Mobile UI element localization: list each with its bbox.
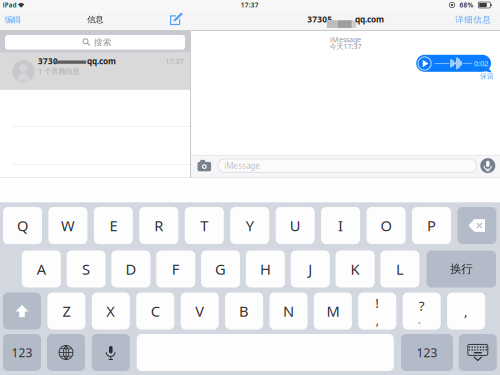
staticText: F (172, 259, 180, 279)
staticText: 3730 (38, 55, 58, 67)
staticText: O (381, 215, 392, 235)
button[interactable]: ! (358, 292, 396, 329)
staticText: Z (62, 301, 70, 321)
button[interactable] (92, 334, 130, 371)
staticText: 信息 (87, 14, 103, 25)
staticText: iMessage (224, 160, 260, 171)
staticText: U (290, 215, 301, 235)
staticText: H (260, 259, 271, 279)
button[interactable]: F (156, 250, 195, 287)
staticText: A (37, 259, 46, 279)
button[interactable]: G (201, 250, 240, 287)
button[interactable]: C (136, 292, 174, 329)
button[interactable]: U (276, 207, 315, 244)
staticText: , (464, 302, 468, 320)
button[interactable]: Camera (196, 157, 212, 173)
button[interactable]: Y (230, 207, 269, 244)
button[interactable]: I (321, 207, 360, 244)
staticText: qq.com (87, 55, 116, 67)
button[interactable] (3, 292, 41, 329)
staticText: iPad (3, 1, 17, 9)
staticText: Y (246, 215, 254, 235)
staticText: 123 (416, 344, 437, 361)
button[interactable]: 3730 (0, 53, 190, 90)
staticText: qq.com (355, 14, 384, 25)
staticText: 保留 (480, 72, 494, 80)
staticText: B (239, 301, 249, 321)
staticText: 17:37 (241, 1, 259, 9)
staticText: iMessage (330, 34, 361, 44)
staticText: 17:37 (165, 57, 183, 66)
staticText: 。 (418, 315, 426, 326)
button[interactable]: P (412, 207, 451, 244)
button[interactable]: iMessage (218, 159, 477, 172)
staticText: T (200, 215, 208, 235)
staticText: 1 个音频信息 (38, 66, 79, 76)
staticText: 123 (11, 344, 32, 361)
staticText: 编辑 (5, 14, 21, 25)
button[interactable]: Dictate (480, 158, 495, 173)
staticText: S (82, 259, 90, 279)
button[interactable]: 编辑 (0, 11, 26, 29)
button[interactable]: E (94, 207, 133, 244)
button[interactable]: K (336, 250, 375, 287)
button[interactable]: A (22, 250, 61, 287)
button[interactable]: V (181, 292, 219, 329)
button[interactable]: 详细信息 (452, 11, 494, 29)
staticText: 详细信息 (455, 14, 491, 25)
button[interactable]: 换行 (426, 250, 496, 287)
button[interactable]: D (111, 250, 150, 287)
button[interactable]: N (269, 292, 307, 329)
staticText: 37305 (307, 14, 332, 25)
button[interactable] (457, 207, 496, 244)
button[interactable]: J (291, 250, 330, 287)
staticText: ? (419, 296, 425, 315)
button[interactable]: ? (403, 292, 441, 329)
staticText: L (396, 259, 404, 279)
staticText: P (427, 215, 436, 235)
staticText: N (283, 301, 294, 321)
button[interactable] (459, 334, 497, 371)
staticText: 今天17:37 (329, 41, 361, 51)
button[interactable]: Q (3, 207, 42, 244)
staticText: M (326, 301, 339, 321)
button[interactable]: W (48, 207, 87, 244)
staticText: Q (17, 215, 28, 235)
button[interactable]: S (67, 250, 106, 287)
button[interactable]: R (139, 207, 178, 244)
staticText: K (351, 259, 360, 279)
button[interactable]: New Message (166, 11, 186, 29)
staticText: V (195, 301, 204, 321)
staticText: 0:02 (474, 58, 488, 69)
button[interactable]: B (225, 292, 263, 329)
staticText: G (215, 259, 226, 279)
staticText: , (376, 312, 379, 328)
staticText: I (338, 215, 343, 235)
staticText: R (154, 215, 163, 235)
button[interactable]: O (367, 207, 406, 244)
button[interactable]: M (314, 292, 352, 329)
button[interactable]: T (185, 207, 224, 244)
staticText: C (151, 301, 160, 321)
staticText: E (109, 215, 117, 235)
staticText: X (106, 301, 115, 321)
button[interactable]: L (380, 250, 419, 287)
staticText: 68% (459, 1, 473, 9)
staticText: D (125, 259, 136, 279)
staticText: J (308, 259, 312, 279)
staticText: W (61, 215, 75, 235)
button[interactable]: , (447, 292, 485, 329)
staticText: ! (375, 294, 379, 312)
staticText: 换行 (450, 262, 472, 276)
button[interactable]: H (246, 250, 285, 287)
button[interactable]: 123 (401, 334, 453, 371)
staticText: 搜索 (94, 37, 112, 48)
button[interactable]: X (92, 292, 130, 329)
button[interactable]: Z (47, 292, 85, 329)
button[interactable]: 123 (3, 334, 41, 371)
button[interactable] (47, 334, 85, 371)
